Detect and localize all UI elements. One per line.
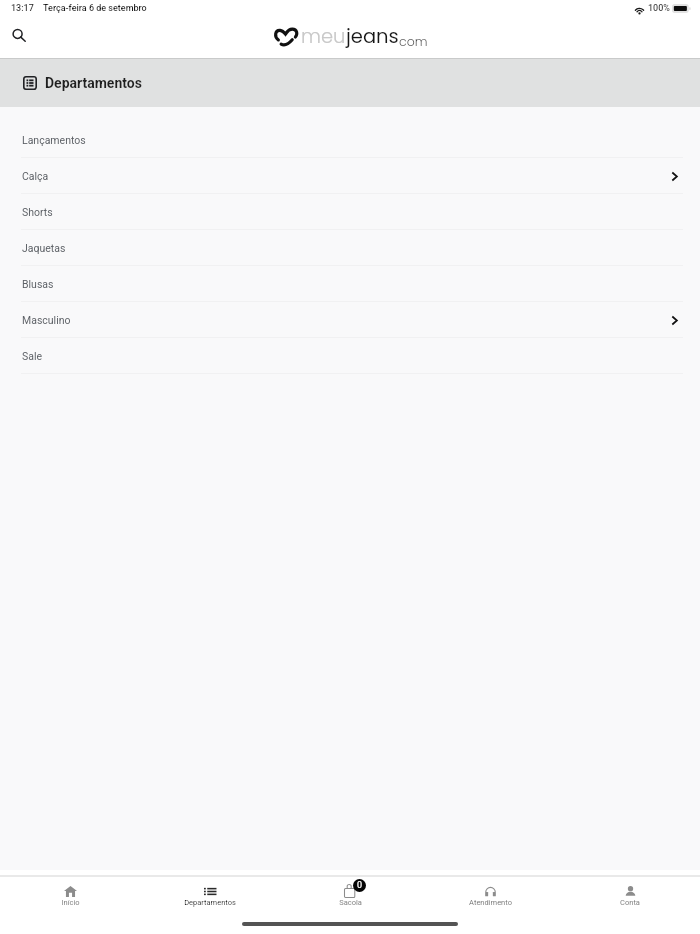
staticText: Masculino: [22, 314, 71, 326]
button[interactable]: Atendimento: [420, 877, 560, 916]
staticText: 0: [357, 880, 363, 891]
staticText: Lançamentos: [22, 134, 86, 146]
staticText: Calça: [22, 170, 49, 182]
button[interactable]: Início: [0, 877, 140, 916]
staticText: Departamentos: [184, 898, 236, 907]
other: Abrir Masculino: [669, 315, 680, 326]
staticText: Departamentos: [45, 75, 142, 91]
staticText: com: [399, 33, 428, 50]
button[interactable]: Shorts: [0, 194, 700, 230]
button[interactable]: Lançamentos: [0, 122, 700, 158]
button[interactable]: Departamentos: [140, 877, 280, 916]
staticText: meu: [301, 23, 346, 50]
staticText: 13:17: [11, 3, 34, 14]
button[interactable]: Search: [6, 22, 30, 46]
staticText: 100%: [648, 3, 670, 14]
button[interactable]: Jaquetas: [0, 230, 700, 266]
staticText: jeans: [346, 23, 399, 50]
staticText: Conta: [620, 898, 640, 907]
staticText: Terça-feira 6 de setembro: [43, 3, 147, 14]
button[interactable]: 0: [280, 877, 420, 916]
staticText: Início: [61, 898, 80, 907]
other: Abrir Calça: [669, 171, 680, 182]
button[interactable]: Sale: [0, 338, 700, 374]
staticText: Sale: [22, 350, 43, 362]
button[interactable]: Calça: [0, 158, 700, 194]
button[interactable]: Masculino: [0, 302, 700, 338]
staticText: Blusas: [22, 278, 54, 290]
button[interactable]: Blusas: [0, 266, 700, 302]
staticText: Shorts: [22, 206, 53, 218]
staticText: Sacola: [339, 898, 362, 907]
staticText: Atendimento: [469, 898, 512, 907]
button[interactable]: Conta: [560, 877, 700, 916]
staticText: Jaquetas: [22, 242, 66, 254]
